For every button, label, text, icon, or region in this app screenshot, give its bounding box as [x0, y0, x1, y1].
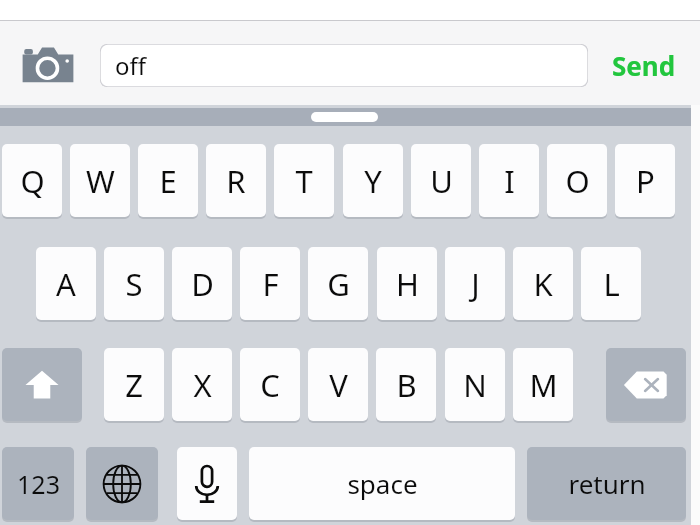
- staticText: L: [603, 263, 620, 305]
- staticText: J: [471, 263, 480, 305]
- button[interactable]: N: [445, 348, 505, 421]
- button[interactable]: A: [36, 247, 96, 320]
- button[interactable]: T: [274, 144, 334, 217]
- staticText: I: [504, 160, 515, 202]
- button[interactable]: J: [445, 247, 505, 320]
- staticText: F: [262, 263, 279, 305]
- staticText: 123: [17, 467, 60, 501]
- staticText: Send: [612, 48, 676, 83]
- button[interactable]: off: [100, 44, 588, 87]
- button[interactable]: F: [240, 247, 300, 320]
- staticText: N: [463, 364, 487, 406]
- button[interactable]: M: [513, 348, 573, 421]
- staticText: M: [529, 364, 558, 406]
- staticText: Q: [20, 160, 45, 202]
- button[interactable]: V: [308, 348, 368, 421]
- staticText: V: [329, 364, 348, 406]
- button[interactable]: 123: [2, 447, 74, 520]
- staticText: P: [636, 160, 655, 202]
- staticText: O: [565, 160, 590, 202]
- button[interactable]: Q: [2, 144, 62, 217]
- button[interactable]: K: [513, 247, 573, 320]
- staticText: H: [396, 263, 419, 305]
- staticText: return: [568, 466, 646, 501]
- button[interactable]: U: [411, 144, 471, 217]
- button[interactable]: D: [172, 247, 232, 320]
- staticText: U: [430, 160, 453, 202]
- button[interactable]: Dictate: [177, 447, 237, 520]
- button[interactable]: L: [581, 247, 641, 320]
- button[interactable]: Shift: [2, 348, 82, 421]
- button[interactable]: C: [240, 348, 300, 421]
- button[interactable]: R: [206, 144, 266, 217]
- button[interactable]: Z: [104, 348, 164, 421]
- button[interactable]: H: [377, 247, 437, 320]
- staticText: K: [533, 263, 553, 305]
- staticText: off: [115, 49, 147, 82]
- staticText: S: [125, 263, 143, 305]
- staticText: C: [260, 364, 280, 406]
- button[interactable]: Camera: [21, 45, 75, 85]
- button[interactable]: X: [172, 348, 232, 421]
- button[interactable]: W: [70, 144, 130, 217]
- button[interactable]: space: [249, 447, 515, 520]
- staticText: W: [86, 160, 115, 202]
- button[interactable]: G: [308, 247, 368, 320]
- button[interactable]: Switch keyboard: [86, 447, 158, 520]
- staticText: Z: [125, 364, 143, 406]
- button[interactable]: I: [479, 144, 539, 217]
- staticText: R: [226, 160, 246, 202]
- button[interactable]: B: [376, 348, 436, 421]
- button[interactable]: Send: [596, 44, 691, 87]
- staticText: space: [347, 466, 418, 501]
- staticText: Y: [364, 160, 382, 202]
- button[interactable]: Keyboard handle: [311, 112, 378, 122]
- button[interactable]: Y: [343, 144, 403, 217]
- staticText: X: [193, 364, 212, 406]
- staticText: D: [191, 263, 214, 305]
- button[interactable]: P: [615, 144, 675, 217]
- button[interactable]: Backspace: [606, 348, 686, 421]
- staticText: B: [396, 364, 417, 406]
- button[interactable]: O: [547, 144, 607, 217]
- staticText: T: [295, 160, 313, 202]
- staticText: G: [327, 263, 350, 305]
- button[interactable]: E: [138, 144, 198, 217]
- staticText: A: [56, 263, 76, 305]
- button[interactable]: S: [104, 247, 164, 320]
- button[interactable]: return: [527, 447, 686, 520]
- staticText: E: [159, 160, 177, 202]
